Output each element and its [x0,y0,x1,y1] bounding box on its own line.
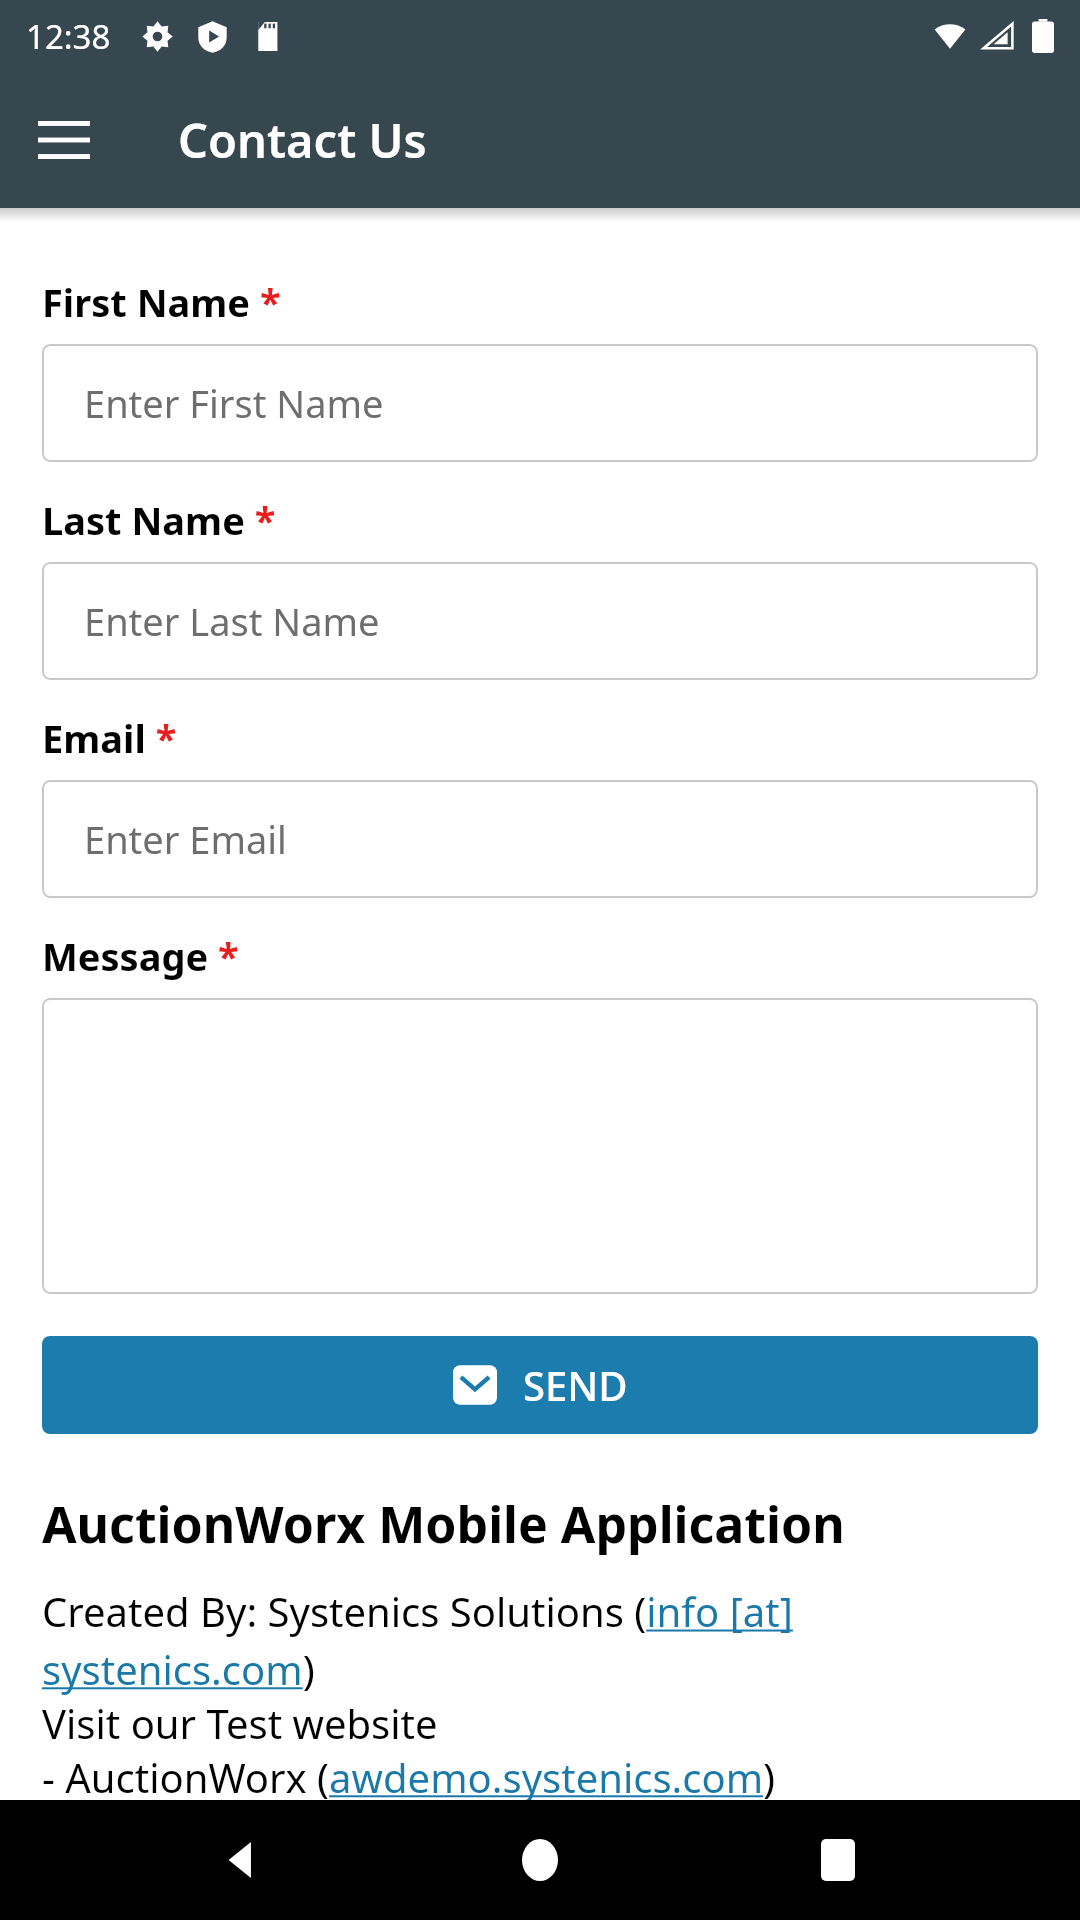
button[interactable]: SEND [42,1336,1038,1434]
staticText: Enter Last Name [84,595,380,647]
staticText: Contact Us [178,108,427,172]
button[interactable]: Enter Last Name [42,562,1038,680]
button[interactable]: Recent apps [783,1805,893,1915]
button[interactable]: Enter First Name [42,344,1038,462]
staticText: Message * [42,930,239,982]
staticText: Enter First Name [84,377,384,429]
staticText: 12:38 [26,14,111,59]
button[interactable]: Back [188,1805,298,1915]
staticText: AuctionWorx Mobile Application [42,1490,845,1558]
button[interactable] [42,998,1038,1294]
button[interactable]: Home [485,1805,595,1915]
staticText: SEND [523,1358,628,1412]
button[interactable]: Open navigation menu [24,100,104,180]
button[interactable]: Enter Email [42,780,1038,898]
button[interactable]: - AuctionWorx (awdemo.systenics.com) [42,1750,776,1800]
staticText: Visit our Test website [42,1696,438,1750]
staticText: First Name * [42,276,281,328]
staticText: Last Name * [42,494,276,546]
staticText: Email * [42,712,177,764]
staticText: Enter Email [84,813,287,865]
button[interactable]: Created By: Systenics Solutions (info [a… [42,1584,1038,1696]
